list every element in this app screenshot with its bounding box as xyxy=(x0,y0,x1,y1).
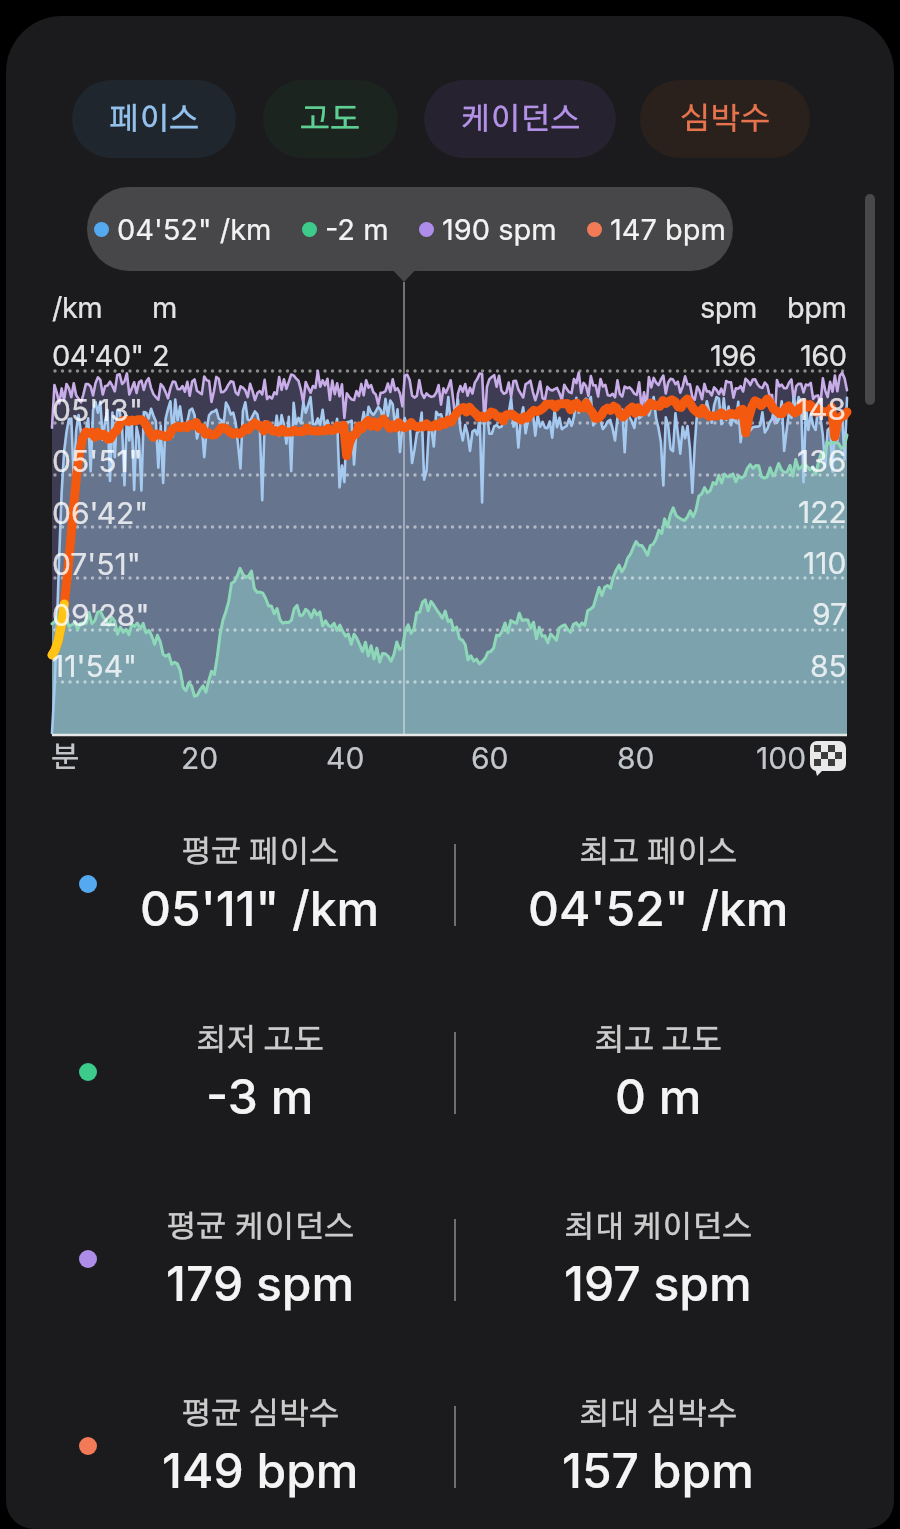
staticText: 최저 고도 xyxy=(196,1025,325,1056)
staticText: 160 xyxy=(800,338,847,373)
staticText: 85 xyxy=(810,648,847,684)
staticText: bpm xyxy=(787,290,847,325)
staticText: 06'42" xyxy=(52,495,149,531)
staticText: 179 spm xyxy=(166,1254,355,1312)
staticText: -2 m xyxy=(325,212,389,247)
staticText: 122 xyxy=(798,494,847,530)
staticText: -3 m xyxy=(206,1067,314,1125)
staticText: 148 xyxy=(796,391,847,427)
staticText: 100 xyxy=(756,740,807,776)
staticText: 05'11" /km xyxy=(140,879,380,937)
button[interactable]: 심박수 xyxy=(640,80,810,158)
staticText: 최대 심박수 xyxy=(579,1399,738,1430)
staticText: 157 bpm xyxy=(562,1441,754,1499)
staticText: 110 xyxy=(803,545,847,581)
staticText: 평균 심박수 xyxy=(181,1399,340,1430)
button[interactable]: 케이던스 xyxy=(424,80,616,158)
staticText: 60 xyxy=(471,740,509,776)
staticText: 2 xyxy=(152,338,170,373)
staticText: 최대 케이던스 xyxy=(564,1212,753,1243)
staticText: 149 bpm xyxy=(162,1441,359,1499)
staticText: 80 xyxy=(617,740,655,776)
staticText: 11'54" xyxy=(52,648,137,684)
staticText: 97 xyxy=(812,596,847,632)
staticText: 09'28" xyxy=(52,597,150,633)
staticText: m xyxy=(152,290,177,325)
staticText: 136 xyxy=(797,443,847,479)
staticText: 05'51" xyxy=(52,443,143,479)
staticText: 04'52" /km xyxy=(117,212,272,247)
staticText: 197 spm xyxy=(564,1254,752,1312)
staticText: 190 spm xyxy=(442,212,557,247)
staticText: 분 xyxy=(51,744,80,773)
staticText: 페이스 xyxy=(109,104,200,135)
staticText: 0 m xyxy=(615,1067,702,1125)
staticText: 평균 케이던스 xyxy=(166,1212,355,1243)
staticText: spm xyxy=(700,290,757,325)
staticText: 04'40" xyxy=(52,338,144,373)
staticText: 196 xyxy=(710,338,757,373)
staticText: 40 xyxy=(326,740,365,776)
staticText: 평균 페이스 xyxy=(181,837,340,868)
staticText: 04'52" /km xyxy=(528,879,789,937)
staticText: 05'13" xyxy=(52,392,143,428)
staticText: 고도 xyxy=(300,104,361,135)
staticText: 케이던스 xyxy=(460,104,581,135)
staticText: 최고 페이스 xyxy=(579,837,738,868)
staticText: 20 xyxy=(181,740,219,776)
staticText: 심박수 xyxy=(680,104,771,135)
button[interactable]: 페이스 xyxy=(72,80,236,158)
staticText: /km xyxy=(52,290,103,325)
staticText: 최고 고도 xyxy=(594,1025,723,1056)
button[interactable]: 고도 xyxy=(263,80,398,158)
staticText: 07'51" xyxy=(52,546,141,582)
staticText: 147 bpm xyxy=(610,212,727,247)
